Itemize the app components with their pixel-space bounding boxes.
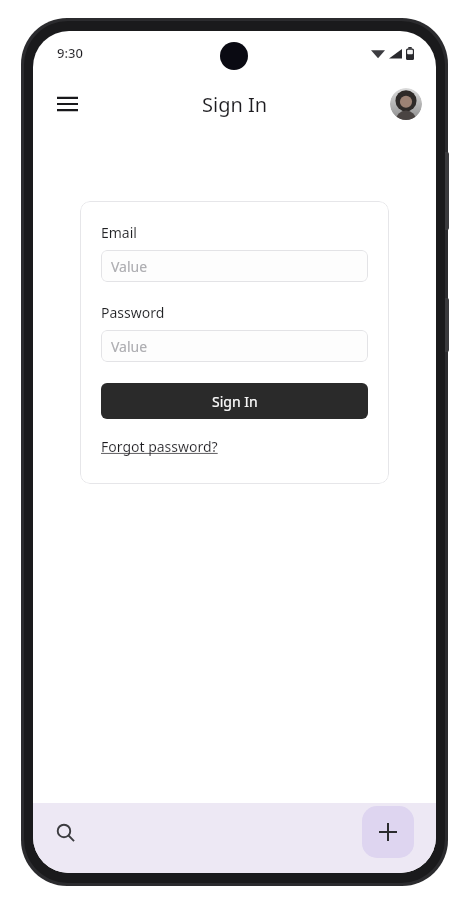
button[interactable]: Forgot password? [101, 437, 218, 456]
staticText: Forgot password? [101, 437, 218, 456]
staticText: 9:30 [57, 44, 83, 62]
staticText: Email [101, 223, 137, 242]
staticText: Value [111, 337, 148, 356]
staticText: Value [111, 257, 148, 276]
staticText: Sign In [212, 392, 258, 411]
button[interactable]: Open navigation menu [45, 82, 89, 126]
staticText: Sign In [202, 91, 268, 118]
button[interactable]: Account profile [390, 88, 422, 120]
button[interactable]: Search [43, 810, 87, 854]
button[interactable]: Value [101, 250, 368, 282]
button[interactable]: Add [362, 806, 414, 858]
button[interactable]: Value [101, 330, 368, 362]
staticText: Password [101, 303, 165, 322]
button[interactable]: Sign In [101, 383, 368, 419]
